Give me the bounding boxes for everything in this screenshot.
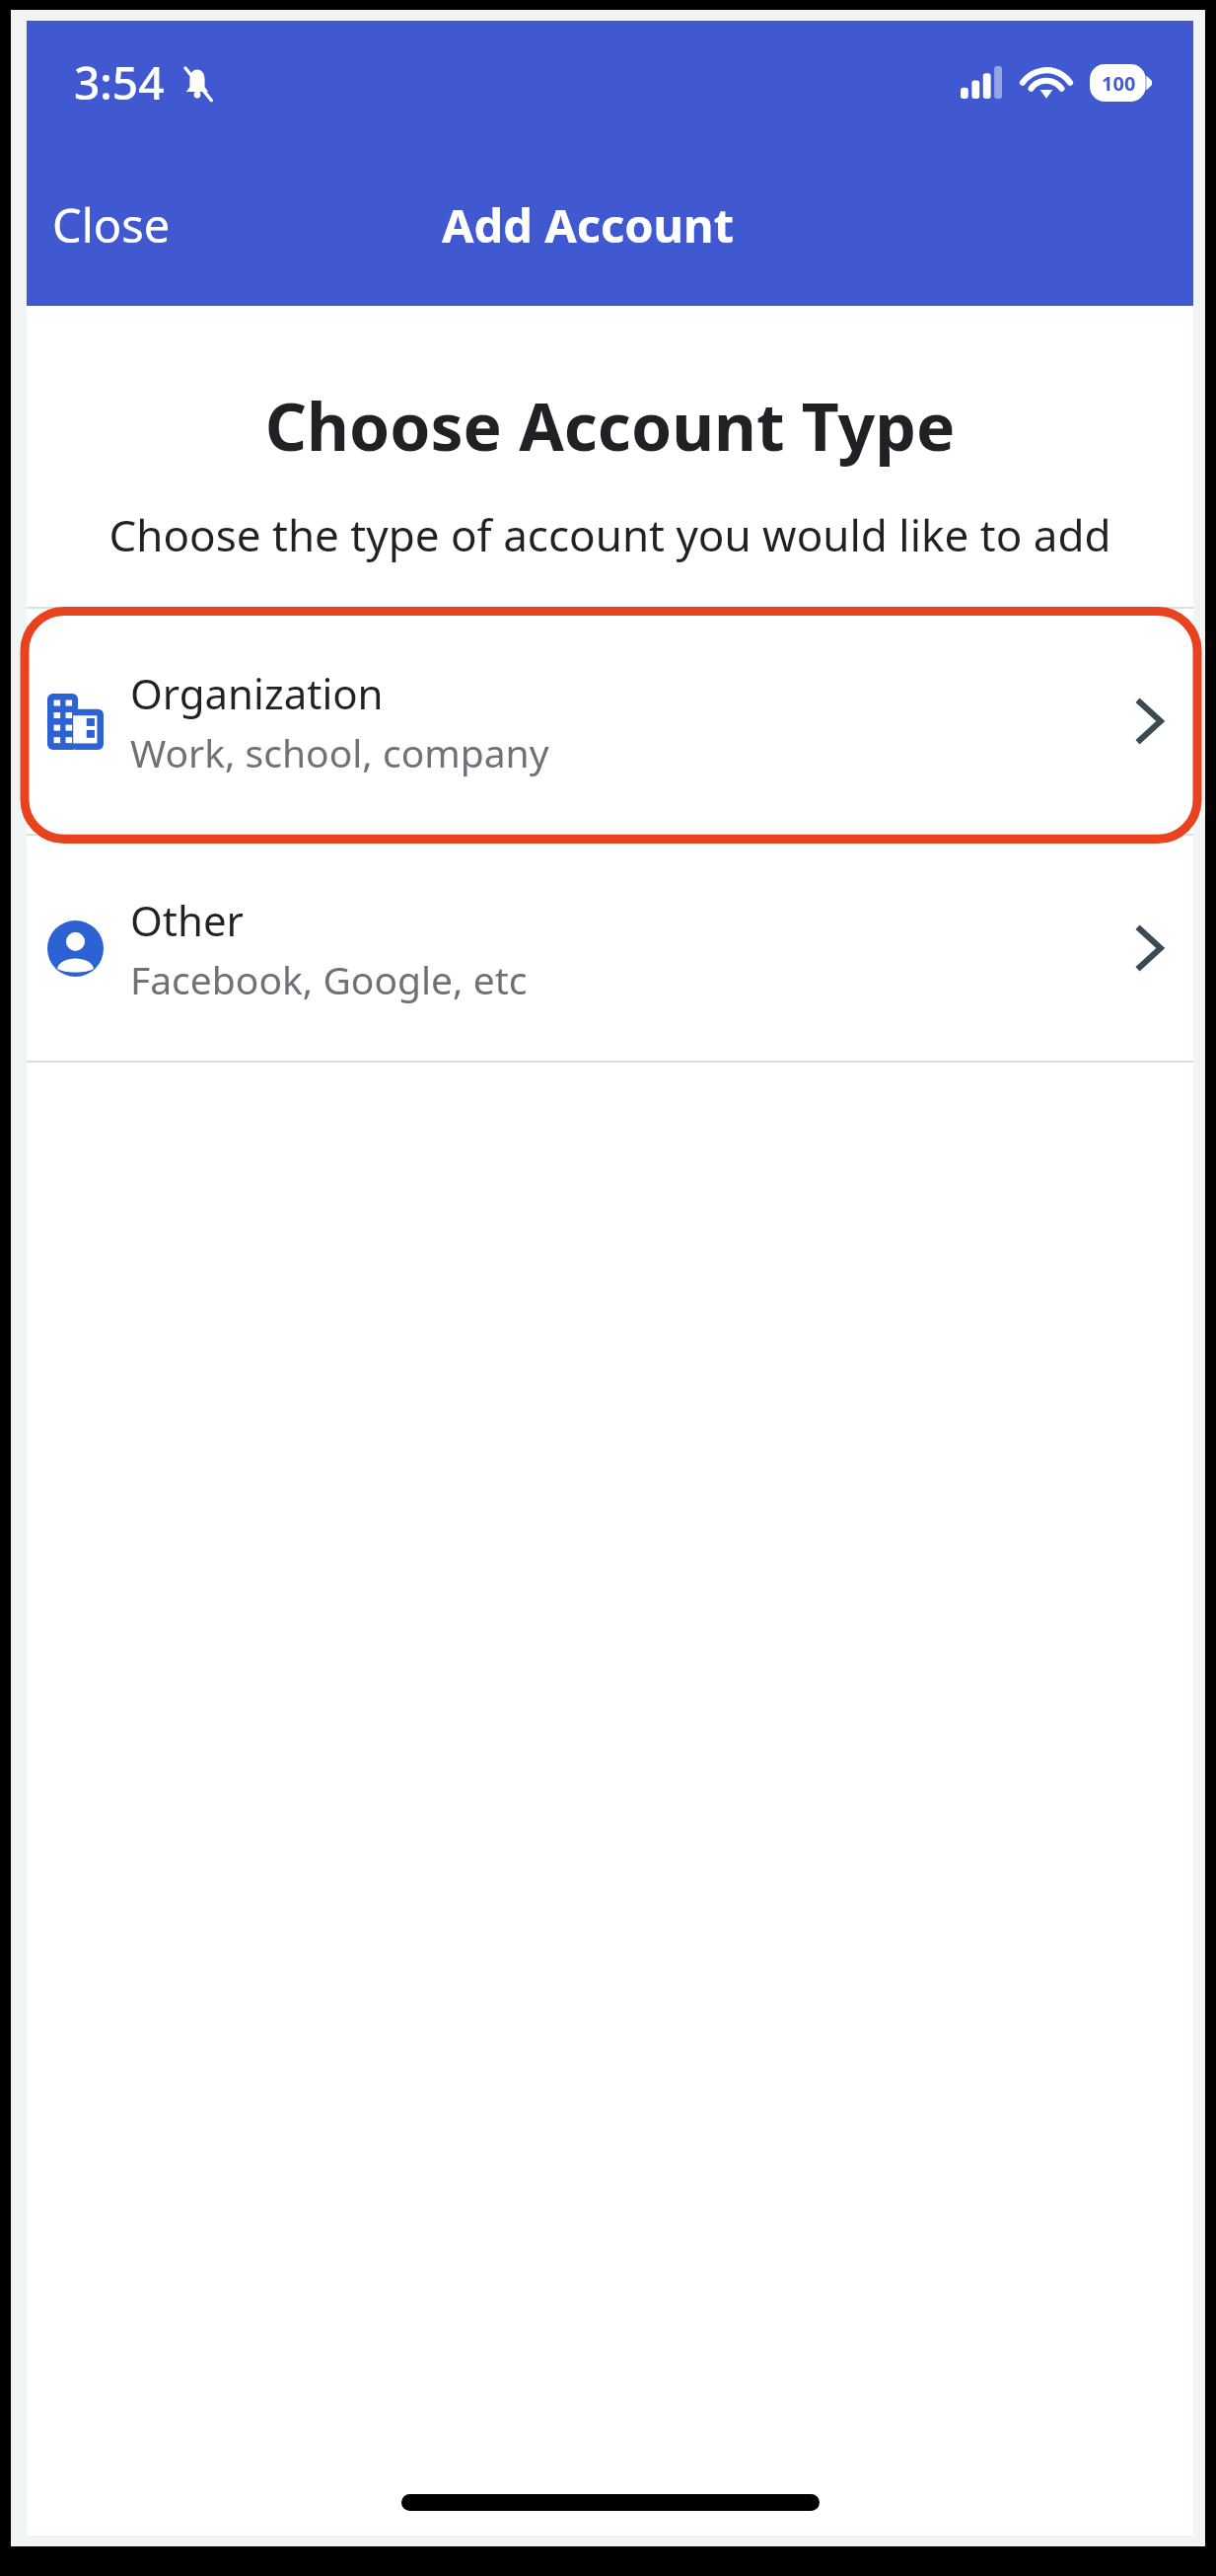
- other: Open Other: [1128, 920, 1170, 977]
- staticText: 3:54: [74, 51, 165, 113]
- staticText: Choose the type of account you would lik…: [56, 505, 1164, 564]
- staticText: Close: [52, 193, 171, 257]
- staticText: Organization: [130, 665, 384, 721]
- other: Open Organization: [1128, 693, 1170, 750]
- staticText: Choose Account Type: [27, 381, 1193, 470]
- button[interactable]: Organization: [27, 609, 1193, 834]
- button[interactable]: Other: [27, 836, 1193, 1061]
- staticText: Facebook, Google, etc: [130, 953, 528, 1005]
- staticText: 100: [1102, 70, 1136, 97]
- staticText: Add Account: [442, 193, 735, 257]
- staticText: Other: [130, 892, 244, 948]
- button[interactable]: Close: [27, 184, 196, 266]
- staticText: Work, school, company: [130, 726, 549, 778]
